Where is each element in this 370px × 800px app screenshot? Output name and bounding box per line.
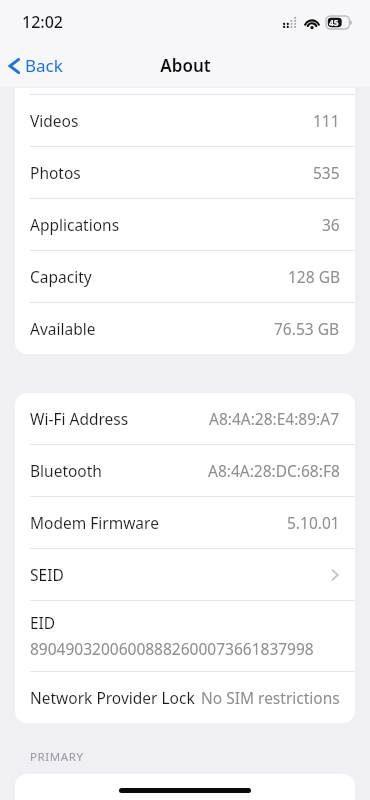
staticText: Available <box>30 318 96 339</box>
button[interactable]: SEID <box>15 549 355 600</box>
other: Battery 45 percent <box>326 16 353 29</box>
staticText: Applications <box>30 214 120 235</box>
button[interactable]: Available <box>15 303 355 354</box>
staticText: Capacity <box>30 266 92 287</box>
staticText: No SIM restrictions <box>201 687 340 708</box>
staticText: Videos <box>30 110 79 131</box>
staticText: Bluetooth <box>30 460 102 481</box>
staticText: Back <box>25 54 63 77</box>
staticText: PRIMARY <box>30 749 84 765</box>
button[interactable]: Capacity <box>15 251 355 302</box>
staticText: Wi-Fi Address <box>30 408 129 429</box>
button[interactable]: Videos <box>15 95 355 146</box>
other: Cellular signal <box>283 17 298 28</box>
staticText: A8:4A:28:E4:89:A7 <box>209 408 340 429</box>
staticText: 45 <box>329 17 339 29</box>
button[interactable]: Applications <box>15 199 355 250</box>
staticText: 128 GB <box>288 266 340 287</box>
other: Wi-Fi <box>304 17 320 29</box>
staticText: 76.53 GB <box>274 318 340 339</box>
staticText: About <box>160 54 211 77</box>
button[interactable]: EID <box>15 601 355 671</box>
staticText: 12:02 <box>22 11 63 33</box>
button[interactable]: Wi-Fi Address <box>15 393 355 444</box>
staticText: Modem Firmware <box>30 512 159 533</box>
staticText: 111 <box>313 110 340 131</box>
button[interactable]: Photos <box>15 147 355 198</box>
button[interactable]: Back <box>0 48 73 83</box>
staticText: 5.10.01 <box>287 512 340 533</box>
staticText: 535 <box>313 162 340 183</box>
staticText: Network Provider Lock <box>30 687 195 708</box>
staticText: EID <box>30 612 56 633</box>
button[interactable]: Modem Firmware <box>15 497 355 548</box>
staticText: 89049032006008882600073661837998 <box>30 638 314 659</box>
staticText: 36 <box>322 214 340 235</box>
button[interactable]: Bluetooth <box>15 445 355 496</box>
button[interactable]: Network Provider Lock <box>15 672 355 723</box>
staticText: SEID <box>30 564 64 585</box>
staticText: A8:4A:28:DC:68:F8 <box>208 460 340 481</box>
staticText: Photos <box>30 162 81 183</box>
